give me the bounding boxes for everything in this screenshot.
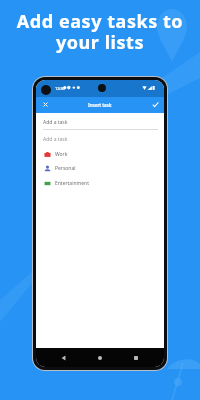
staticText: Add a task [43, 136, 68, 143]
button[interactable]: Recents [130, 352, 142, 364]
button[interactable]: Personal [36, 161, 164, 175]
staticText: Work [55, 151, 68, 158]
staticText: Add a task [43, 119, 68, 126]
button[interactable]: Entertainment [36, 176, 164, 190]
staticText: Entertainment [55, 180, 89, 187]
staticText: Add easy tasks to your lists [0, 9, 200, 54]
button[interactable]: Back [58, 352, 70, 364]
staticText: Insert task [88, 102, 112, 109]
staticText: 12:36 [55, 86, 65, 92]
button[interactable]: Work [36, 147, 164, 161]
button[interactable]: Home [94, 352, 106, 364]
button[interactable]: Close [41, 100, 50, 109]
button[interactable]: Save [151, 100, 160, 109]
staticText: Personal [55, 165, 76, 172]
